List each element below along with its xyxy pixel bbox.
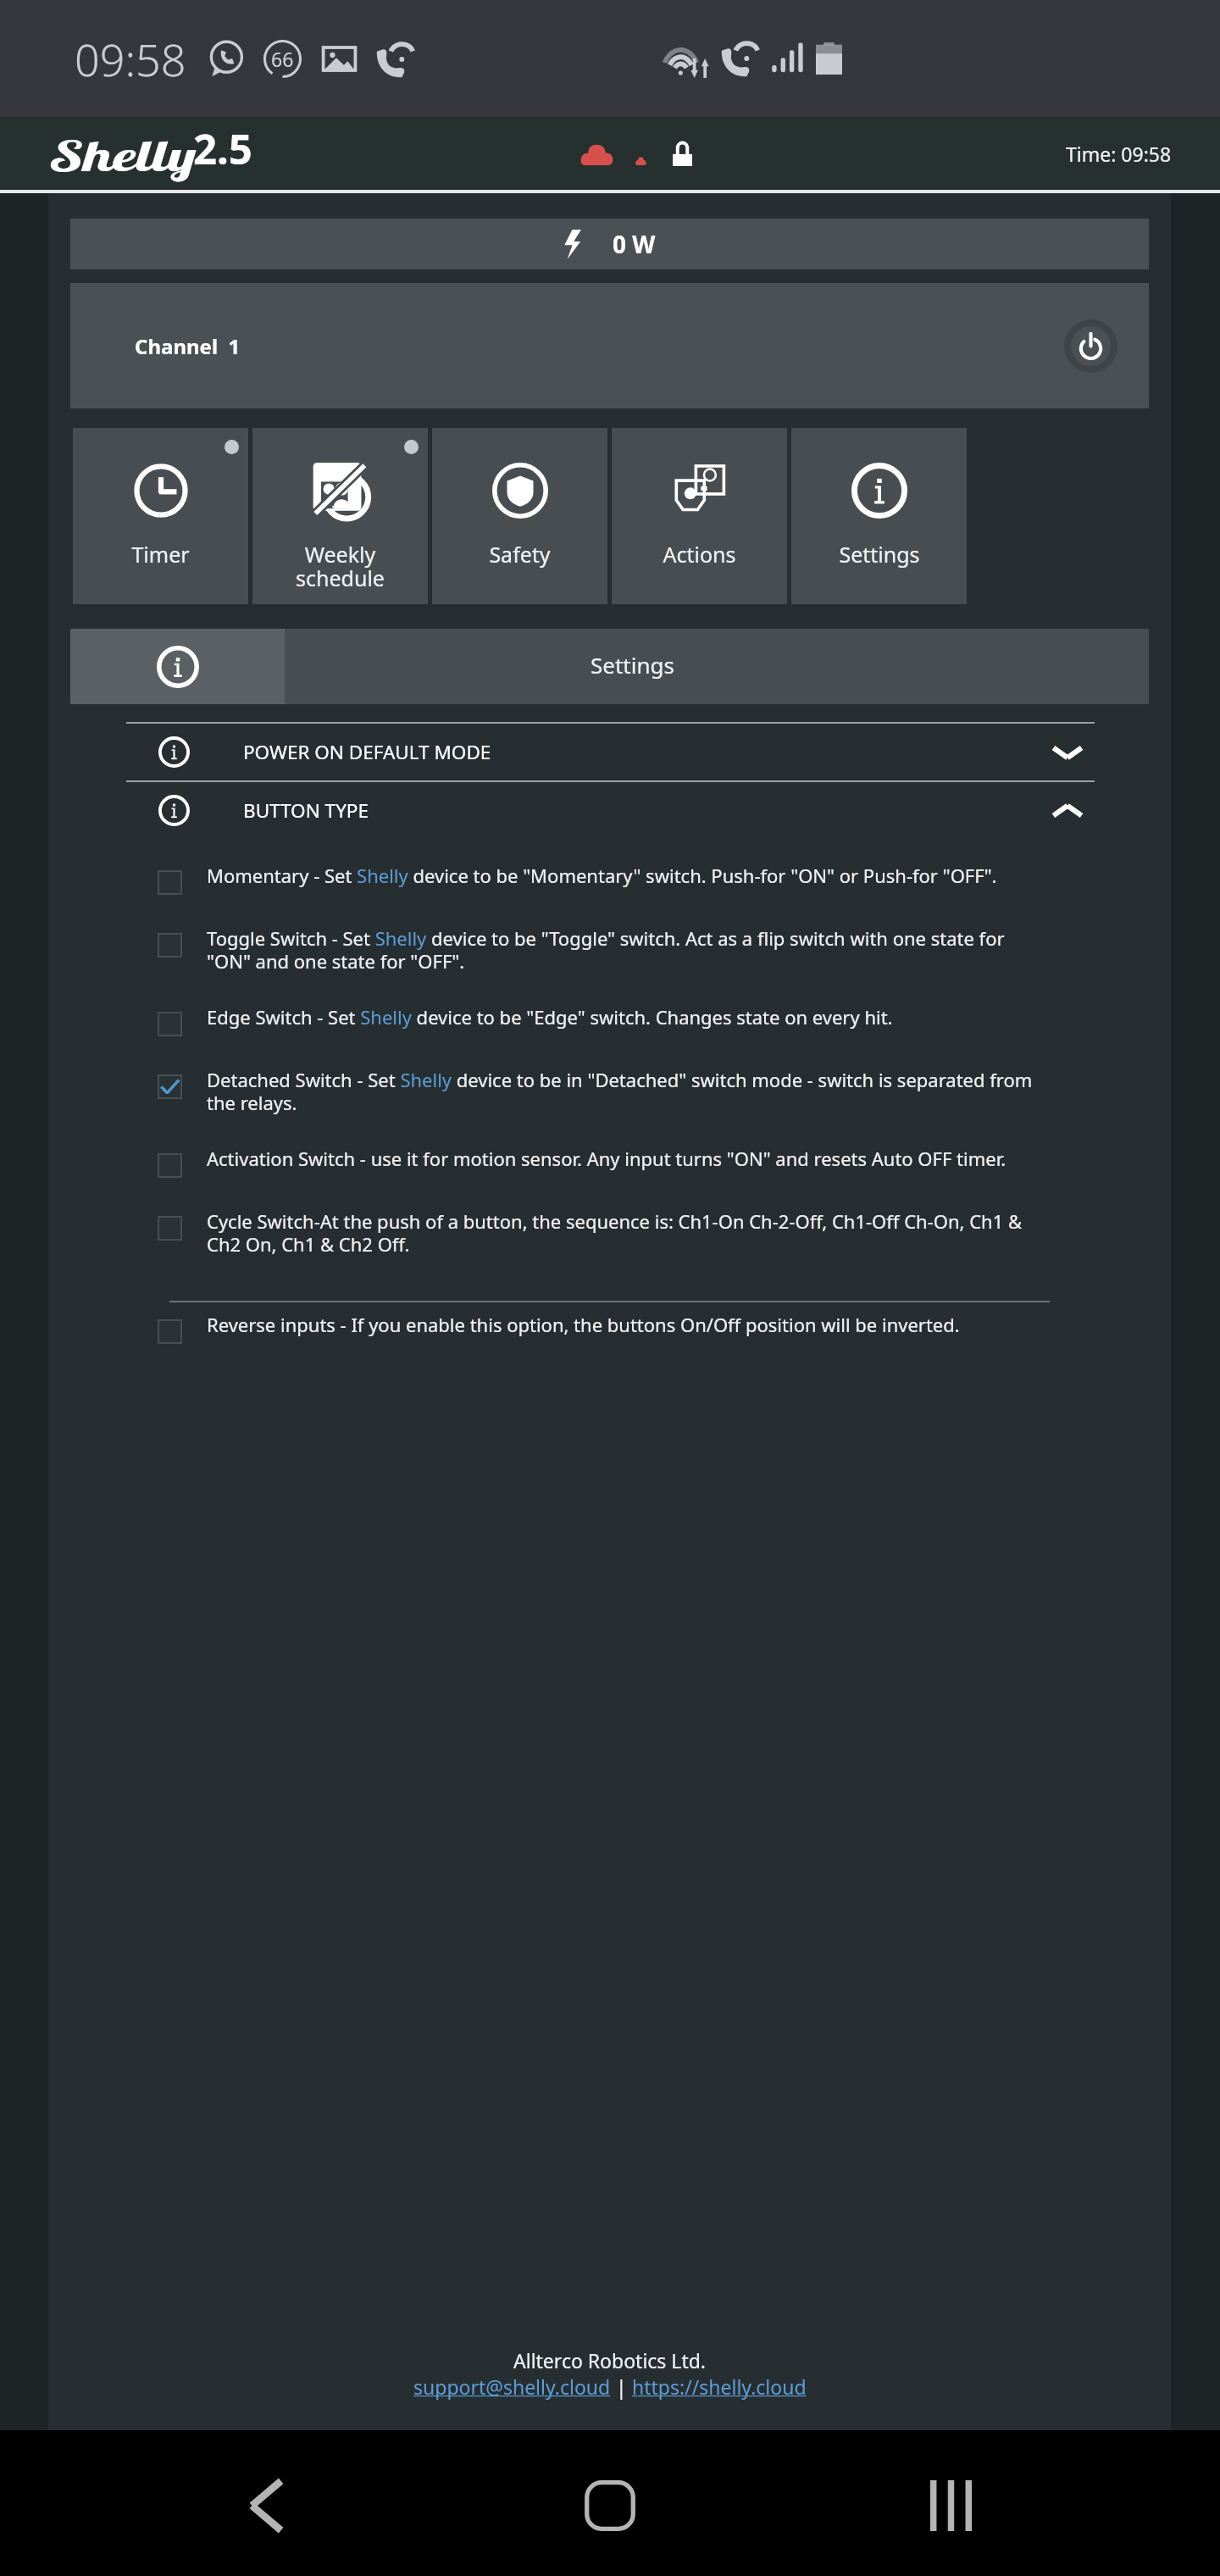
staticText: 09:58: [75, 29, 186, 89]
staticText: Timer: [131, 540, 190, 569]
button[interactable]: Weekly schedule: [252, 428, 428, 604]
button[interactable]: Channel 1: [70, 283, 1149, 408]
staticText: Safety: [489, 540, 551, 569]
button[interactable]: POWER ON DEFAULT MODE: [126, 724, 1095, 780]
button[interactable]: Toggle Switch - Set Shelly device to be …: [158, 925, 1050, 974]
button[interactable]: BUTTON TYPE: [126, 782, 1095, 839]
button[interactable]: Device info: [70, 629, 285, 704]
staticText: Settings: [839, 540, 920, 569]
staticText: Time: 09:58: [1066, 141, 1172, 167]
staticText: Activation Switch - use it for motion se…: [207, 1146, 1006, 1171]
staticText: Shelly: [51, 129, 197, 181]
button[interactable]: Recent apps: [782, 2430, 1220, 2576]
button[interactable]: Reverse inputs - If you enable this opti…: [158, 1312, 1050, 1344]
staticText: Weekly schedule: [296, 540, 385, 592]
button[interactable]: Settings: [285, 629, 1149, 704]
button[interactable]: Safety: [432, 428, 607, 604]
button[interactable]: Detached Switch - Set Shelly device to b…: [158, 1067, 1050, 1115]
staticText: Actions: [663, 540, 736, 569]
staticText: 2.5: [193, 120, 252, 177]
staticText: 66: [271, 46, 294, 72]
button[interactable]: https://shelly.cloud: [632, 2373, 807, 2400]
button[interactable]: Edge Switch - Set Shelly device to be "E…: [158, 1004, 1050, 1036]
button[interactable]: Actions: [612, 428, 787, 604]
staticText: Detached Switch - Set Shelly device to b…: [207, 1067, 1050, 1115]
button[interactable]: Back: [0, 2430, 438, 2576]
button[interactable]: support@shelly.cloud: [413, 2373, 611, 2400]
staticText: |: [611, 2373, 632, 2400]
staticText: Momentary - Set Shelly device to be "Mom…: [207, 863, 997, 888]
button[interactable]: Toggle Channel 1 power: [1064, 319, 1117, 373]
button[interactable]: 0 W: [70, 219, 1149, 269]
button[interactable]: Cycle Switch-At the push of a button, th…: [158, 1208, 1050, 1257]
staticText: Cycle Switch-At the push of a button, th…: [207, 1208, 1050, 1257]
staticText: POWER ON DEFAULT MODE: [243, 739, 491, 765]
staticText: Allterco Robotics Ltd.: [513, 2347, 707, 2373]
button[interactable]: Activation Switch - use it for motion se…: [158, 1146, 1050, 1178]
staticText: Settings: [591, 650, 674, 680]
staticText: Edge Switch - Set Shelly device to be "E…: [207, 1004, 893, 1030]
staticText: Reverse inputs - If you enable this opti…: [207, 1312, 960, 1337]
button[interactable]: Momentary - Set Shelly device to be "Mom…: [158, 863, 1050, 895]
staticText: Toggle Switch - Set Shelly device to be …: [207, 925, 1050, 974]
staticText: Channel 1: [135, 332, 241, 360]
button[interactable]: Home: [438, 2430, 782, 2576]
staticText: 0 W: [613, 228, 656, 260]
button[interactable]: Settings: [791, 428, 967, 604]
staticText: BUTTON TYPE: [243, 797, 369, 824]
button[interactable]: Timer: [73, 428, 248, 604]
